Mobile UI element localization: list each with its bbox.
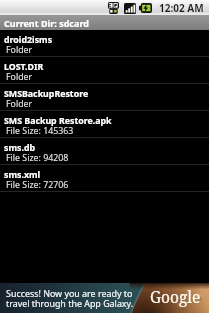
staticText: SMS Backup Restore.apk <box>4 115 112 127</box>
staticText: File Size: 72706 <box>6 179 69 191</box>
other: Battery charging <box>139 3 152 13</box>
staticText: LOST.DIR <box>4 61 44 73</box>
other: Signal strength <box>124 3 136 14</box>
button[interactable]: sms.xml <box>0 165 209 192</box>
staticText: 12:02 AM <box>159 1 204 15</box>
staticText: Current Dir: sdcard <box>4 17 89 29</box>
staticText: droid2isms <box>4 34 53 46</box>
staticText: sms.xml <box>4 169 41 181</box>
other: 3G data <box>108 2 119 14</box>
button[interactable]: Advertisement banner <box>0 283 209 313</box>
button[interactable]: LOST.DIR <box>0 57 209 84</box>
button[interactable]: droid2isms <box>0 30 209 57</box>
button[interactable]: SMS Backup Restore.apk <box>0 111 209 138</box>
staticText: File Size: 94208 <box>6 152 69 164</box>
staticText: Success! Now you are ready to <box>6 287 133 299</box>
staticText: travel through the App Galaxy. <box>6 297 134 309</box>
staticText: Folder <box>6 98 33 110</box>
staticText: Folder <box>6 71 33 83</box>
button[interactable]: sms.db <box>0 138 209 165</box>
staticText: sms.db <box>4 142 36 154</box>
staticText: File Size: 145363 <box>6 125 74 137</box>
button[interactable]: SMSBackupRestore <box>0 84 209 111</box>
staticText: Google <box>150 286 201 307</box>
staticText: SMSBackupRestore <box>4 88 89 100</box>
staticText: Folder <box>6 44 33 56</box>
